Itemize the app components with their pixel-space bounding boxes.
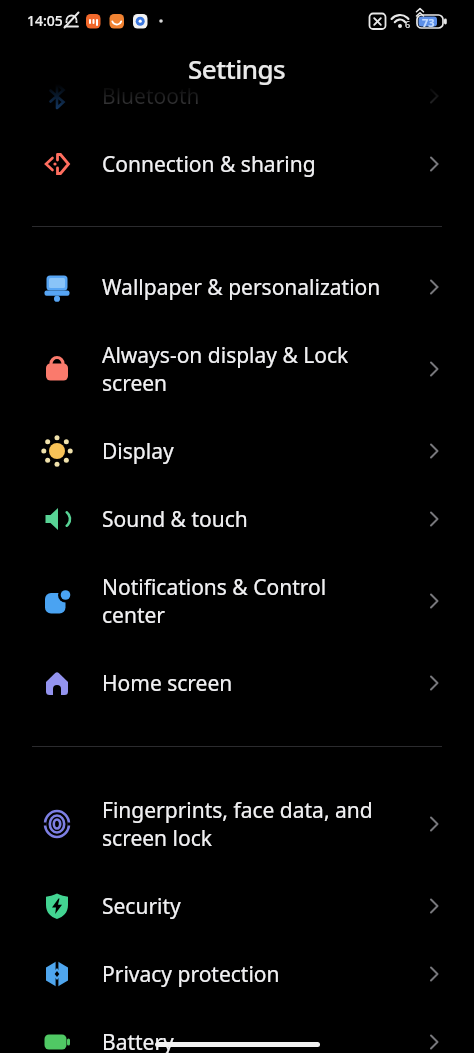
button[interactable]: Bluetooth <box>0 62 474 130</box>
staticText: Battery <box>102 1028 174 1053</box>
button[interactable]: Notifications & Control center <box>0 553 474 649</box>
button[interactable]: Privacy protection <box>0 940 474 1008</box>
staticText: Connection & sharing <box>102 150 316 179</box>
staticText: Home screen <box>102 669 233 698</box>
staticText: Settings <box>188 51 286 86</box>
button[interactable]: Connection & sharing <box>0 130 474 198</box>
staticText: Display <box>102 437 174 466</box>
button[interactable]: Always-on display & Lock screen <box>0 321 474 417</box>
button[interactable]: Fingerprints, face data, and screen lock <box>0 776 474 872</box>
button[interactable]: Home screen <box>0 649 474 717</box>
staticText: 6 <box>405 18 411 30</box>
staticText: Sound & touch <box>102 505 248 534</box>
staticText: Always-on display & Lock screen <box>102 341 349 397</box>
staticText: 73 <box>422 15 435 30</box>
button[interactable]: Battery <box>0 1008 474 1053</box>
staticText: Fingerprints, face data, and screen lock <box>102 796 373 852</box>
staticText: Wallpaper & personalization <box>102 273 381 302</box>
staticText: Notifications & Control center <box>102 573 327 629</box>
staticText: Security <box>102 892 181 921</box>
staticText: Bluetooth <box>102 82 200 111</box>
button[interactable]: Display <box>0 417 474 485</box>
staticText: Privacy protection <box>102 960 280 989</box>
staticText: 14:05 <box>27 11 63 30</box>
button[interactable]: Security <box>0 872 474 940</box>
button[interactable]: Sound & touch <box>0 485 474 553</box>
button[interactable]: Wallpaper & personalization <box>0 253 474 321</box>
